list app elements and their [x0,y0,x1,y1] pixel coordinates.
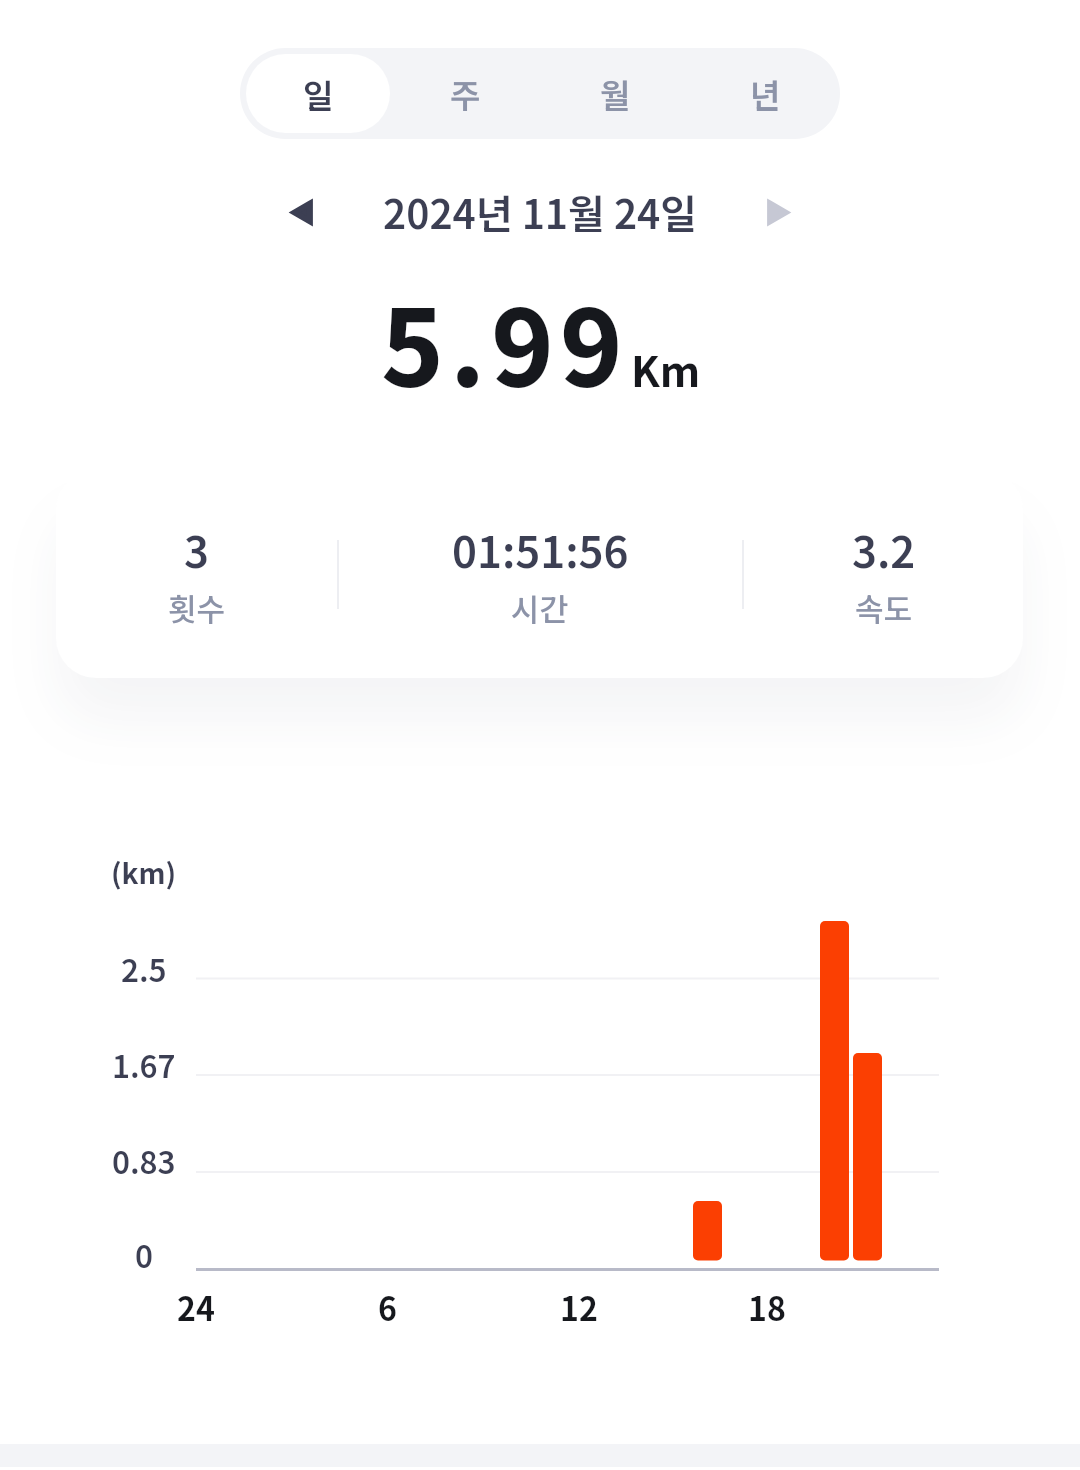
staticText: 01:51:56 [452,518,629,580]
staticText: 2.5 [121,946,167,986]
staticText: 0 [135,1232,153,1272]
staticText: 속도 [855,585,913,630]
staticText: 0.83 [112,1138,176,1178]
staticText: 시간 [511,585,569,630]
staticText: 18 [748,1284,786,1328]
staticText: 년 [750,70,781,118]
staticText: 3.2 [852,518,916,580]
button[interactable]: Next day [748,182,808,242]
button[interactable]: 월 [540,54,690,133]
button[interactable]: 01:51:56 [339,470,741,678]
staticText: 1.67 [112,1042,176,1082]
staticText: Km [631,338,701,399]
staticText: 2024년 11월 24일 [383,183,698,241]
button[interactable]: 주 [390,54,540,133]
button[interactable]: 년 [690,54,840,133]
button[interactable]: 3 [56,470,337,678]
staticText: (km) [111,852,177,893]
button[interactable]: 3.2 [744,470,1023,678]
staticText: 주 [450,70,481,118]
staticText: 5.99 [381,265,629,417]
button[interactable]: 일 [246,54,390,133]
staticText: 24 [177,1284,215,1328]
button[interactable]: Previous day [271,182,331,242]
staticText: 3 [184,518,209,580]
staticText: 횟수 [168,585,226,630]
staticText: 일 [303,70,334,118]
staticText: 6 [378,1284,397,1328]
staticText: 12 [560,1284,598,1328]
staticText: 월 [600,70,631,118]
